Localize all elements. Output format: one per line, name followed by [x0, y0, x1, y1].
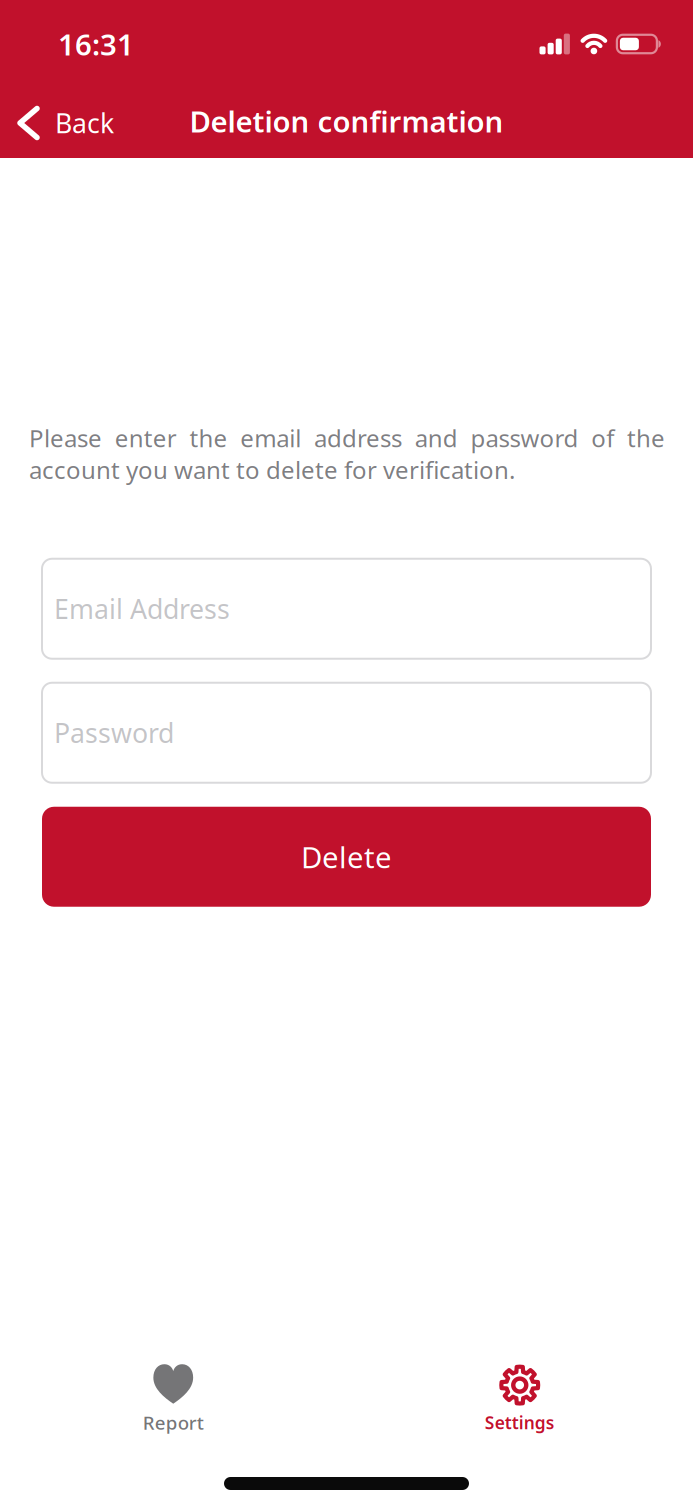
staticText: Password — [54, 715, 174, 750]
staticText: address — [314, 422, 402, 454]
staticText: and — [415, 422, 458, 454]
staticText: Report — [143, 1410, 204, 1435]
button[interactable]: Back — [0, 105, 114, 141]
staticText: the — [627, 422, 665, 454]
staticText: Email Address — [54, 591, 230, 626]
staticText: Please — [29, 422, 102, 454]
staticText: account you want to delete for verificat… — [29, 454, 515, 486]
staticText: password — [470, 422, 578, 454]
staticText: of — [591, 422, 614, 454]
staticText: email — [240, 422, 301, 454]
staticText: Deletion confirmation — [189, 101, 503, 140]
staticText: 16:31 — [58, 24, 134, 63]
button[interactable]: Email Address — [42, 559, 651, 659]
button[interactable]: Settings — [346, 1364, 693, 1434]
button[interactable]: Delete — [42, 807, 651, 907]
staticText: Back — [55, 105, 114, 141]
button[interactable]: Password — [42, 683, 651, 783]
staticText: the — [189, 422, 227, 454]
button[interactable]: Report — [0, 1363, 346, 1435]
staticText: Delete — [301, 837, 392, 876]
staticText: Settings — [485, 1411, 555, 1434]
staticText: enter — [115, 422, 177, 454]
